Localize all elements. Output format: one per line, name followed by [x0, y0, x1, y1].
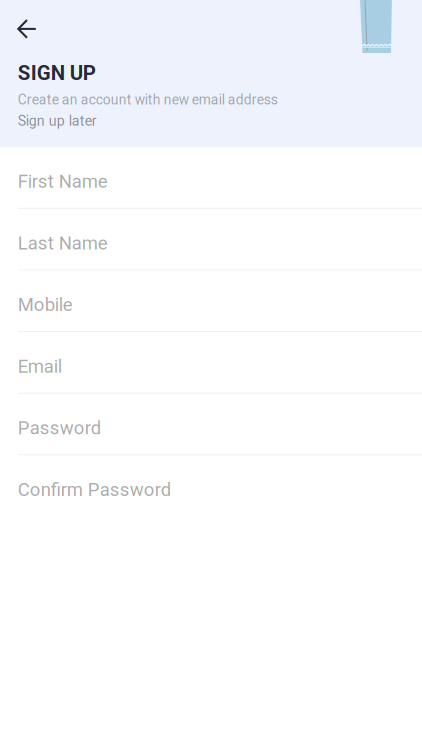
staticText: Confirm Password [18, 479, 171, 500]
button[interactable]: Email [0, 332, 422, 394]
staticText: First Name [18, 171, 108, 192]
button[interactable]: Password [0, 394, 422, 455]
button[interactable]: Confirm Password [0, 455, 422, 517]
staticText: Mobile [18, 294, 73, 315]
staticText: Password [18, 417, 101, 439]
staticText: Email [18, 355, 62, 377]
staticText: Sign up later [18, 113, 97, 129]
button[interactable]: Mobile [0, 270, 422, 332]
button[interactable]: Sign up later [0, 108, 107, 131]
button[interactable]: Last Name [0, 209, 422, 270]
staticText: SIGN UP [18, 61, 96, 85]
button[interactable]: Back [0, 0, 54, 46]
button[interactable]: First Name [0, 147, 422, 209]
staticText: Create an account with new email address [18, 92, 278, 108]
staticText: Last Name [18, 232, 108, 254]
